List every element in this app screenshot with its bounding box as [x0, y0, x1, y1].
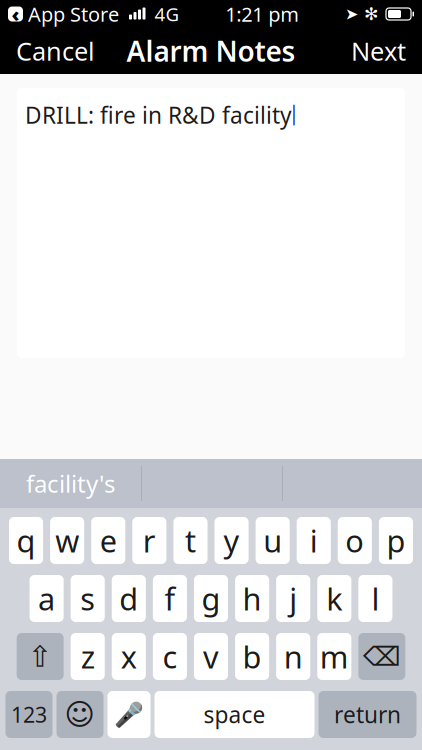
- button[interactable]: space: [154, 691, 314, 738]
- staticText: i: [310, 520, 318, 561]
- button[interactable]: Cancel: [0, 28, 111, 74]
- button[interactable]: Back to App Store: [8, 1, 119, 27]
- staticText: facility's: [26, 468, 115, 499]
- button[interactable]: x: [112, 633, 146, 680]
- staticText: u: [263, 520, 282, 561]
- button[interactable]: return: [318, 691, 416, 738]
- button[interactable]: e: [91, 517, 125, 564]
- staticText: f: [164, 578, 175, 619]
- staticText: ➤: [345, 5, 358, 23]
- button[interactable]: y: [214, 517, 249, 564]
- button[interactable]: 123: [5, 691, 52, 738]
- staticText: ‹: [11, 1, 19, 27]
- staticText: DRILL: fire in R&D facility: [25, 100, 292, 130]
- staticText: ⌫: [363, 641, 401, 672]
- button[interactable]: n: [276, 633, 310, 680]
- staticText: r: [143, 520, 156, 561]
- button[interactable]: Dictate: [107, 691, 150, 738]
- staticText: d: [119, 578, 138, 619]
- button[interactable]: o: [338, 517, 372, 564]
- button[interactable]: a: [29, 575, 64, 622]
- button[interactable]: f: [153, 575, 187, 622]
- staticText: q: [16, 520, 35, 561]
- staticText: j: [289, 578, 297, 619]
- staticText: y: [223, 520, 239, 561]
- button[interactable]: z: [71, 633, 105, 680]
- staticText: g: [201, 578, 220, 619]
- staticText: Alarm Notes: [126, 32, 295, 70]
- button[interactable]: p: [379, 517, 413, 564]
- staticText: e: [100, 520, 117, 561]
- button[interactable]: b: [235, 633, 269, 680]
- staticText: 4G: [154, 2, 179, 26]
- staticText: 1:21 pm: [225, 1, 299, 27]
- staticText: ✻: [364, 4, 379, 24]
- button[interactable]: h: [235, 575, 269, 622]
- button[interactable]: s: [71, 575, 105, 622]
- staticText: Next: [351, 34, 406, 68]
- button[interactable]: j: [276, 575, 310, 622]
- staticText: 123: [11, 700, 47, 729]
- staticText: c: [162, 636, 177, 677]
- button[interactable]: l: [358, 575, 392, 622]
- staticText: p: [386, 520, 405, 561]
- button[interactable]: m: [317, 633, 351, 680]
- staticText: a: [38, 578, 55, 619]
- staticText: h: [243, 578, 262, 619]
- staticText: Cancel: [16, 34, 95, 68]
- button[interactable]: c: [153, 633, 187, 680]
- button[interactable]: q: [9, 517, 43, 564]
- staticText: o: [345, 520, 364, 561]
- button[interactable]: r: [132, 517, 166, 564]
- button[interactable]: t: [173, 517, 207, 564]
- button[interactable]: g: [194, 575, 228, 622]
- staticText: return: [334, 699, 401, 729]
- button[interactable]: Emoji: [56, 691, 103, 738]
- button[interactable]: facility's: [0, 459, 141, 508]
- staticText: n: [284, 636, 303, 677]
- staticText: b: [243, 636, 262, 677]
- staticText: 🎤: [114, 701, 144, 728]
- button[interactable]: w: [50, 517, 84, 564]
- button[interactable]: i: [297, 517, 331, 564]
- staticText: k: [326, 578, 342, 619]
- staticText: App Store: [28, 1, 119, 27]
- staticText: ⇧: [28, 640, 53, 673]
- staticText: w: [55, 520, 79, 561]
- button[interactable]: Next: [335, 28, 422, 74]
- button[interactable]: Shift: [17, 633, 64, 680]
- staticText: m: [320, 636, 349, 677]
- button[interactable]: v: [194, 633, 228, 680]
- button[interactable]: u: [256, 517, 290, 564]
- button[interactable]: d: [112, 575, 146, 622]
- staticText: x: [121, 636, 137, 677]
- staticText: l: [371, 578, 379, 619]
- button[interactable]: Delete: [358, 633, 405, 680]
- staticText: v: [203, 636, 219, 677]
- staticText: t: [185, 520, 196, 561]
- button[interactable]: k: [317, 575, 351, 622]
- staticText: z: [81, 636, 95, 677]
- staticText: s: [80, 578, 95, 619]
- button[interactable]: Note text field: [17, 88, 405, 358]
- staticText: ☺: [64, 698, 95, 731]
- staticText: space: [203, 699, 265, 729]
